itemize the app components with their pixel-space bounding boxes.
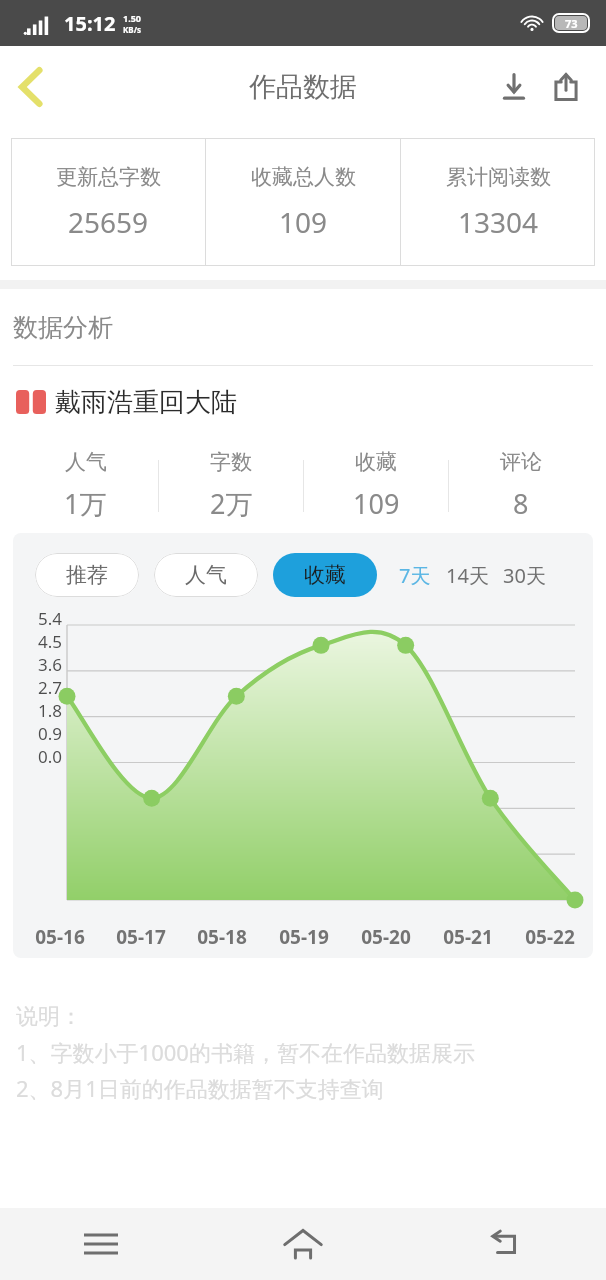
staticText: 8 [513,485,529,522]
staticText: 戴雨浩重回大陆 [55,386,237,419]
staticText: 0.9 [38,722,63,745]
staticText: 收藏 [304,562,346,588]
button[interactable]: Back [404,1208,606,1280]
staticText: 人气 [185,562,227,588]
staticText: 3.6 [38,653,63,676]
staticText: 2万 [210,485,253,522]
button[interactable]: 人气 [13,438,158,533]
staticText: 05-21 [443,924,493,950]
staticText: 05-20 [361,924,411,950]
button[interactable]: Home [202,1208,404,1280]
button[interactable]: 推荐 [35,553,139,597]
staticText: 05-18 [197,924,247,950]
staticText: 2、8月1日前的作品数据暂不支持查询 [16,1073,384,1103]
staticText: KB/s [123,24,141,35]
staticText: 累计阅读数 [446,164,551,190]
staticText: 评论 [500,449,542,475]
button[interactable]: 14天 [446,562,489,589]
button[interactable]: 更新总字数 [11,138,205,266]
staticText: 作品数据 [249,70,357,104]
button[interactable]: Download [488,61,540,113]
button[interactable]: 收藏总人数 [206,138,400,266]
staticText: 说明： [16,1003,82,1031]
staticText: 0.0 [38,745,63,768]
button[interactable]: Share [540,61,592,113]
staticText: 收藏 [355,449,397,475]
button[interactable]: 评论 [449,438,593,533]
staticText: 15:12 [64,10,116,37]
staticText: 05-19 [279,924,329,950]
staticText: 4.5 [38,630,63,653]
staticText: 1、字数小于1000的书籍，暂不在作品数据展示 [16,1037,475,1067]
staticText: 2.7 [38,676,63,699]
staticText: 1.50 [123,12,141,24]
staticText: 收藏总人数 [251,164,356,190]
staticText: 13304 [458,203,539,241]
staticText: 05-16 [35,924,85,950]
staticText: 05-17 [116,924,166,950]
staticText: 1万 [64,485,107,522]
staticText: 1.8 [38,699,63,722]
button[interactable]: 7天 [399,562,431,589]
button[interactable]: 戴雨浩重回大陆 [16,366,606,438]
button[interactable]: 累计阅读数 [401,138,595,266]
button[interactable]: 30天 [503,562,546,589]
button[interactable]: 字数 [159,438,303,533]
staticText: 字数 [210,449,252,475]
button[interactable]: 收藏 [304,438,448,533]
staticText: 109 [353,485,400,522]
staticText: 05-22 [525,924,575,950]
button[interactable]: 人气 [154,553,258,597]
staticText: 25659 [68,203,149,241]
staticText: 数据分析 [13,312,113,343]
staticText: 人气 [65,449,107,475]
staticText: 5.4 [38,607,63,630]
staticText: 109 [279,203,328,241]
staticText: 更新总字数 [56,164,161,190]
button[interactable]: Back [0,56,62,118]
button[interactable]: 收藏 [273,553,377,597]
button[interactable]: Menu [0,1208,202,1280]
staticText: 推荐 [66,562,108,588]
staticText: 73 [565,16,578,30]
